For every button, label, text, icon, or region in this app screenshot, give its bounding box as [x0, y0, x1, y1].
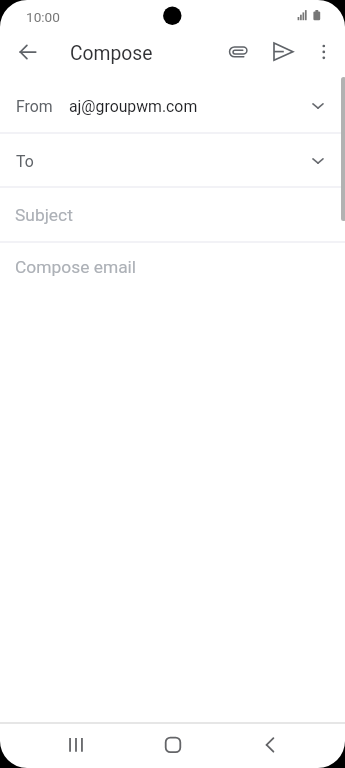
staticText: aj@groupwm.com: [69, 97, 198, 116]
button[interactable]: Home: [155, 727, 191, 763]
button[interactable]: Compose email: [0, 242, 345, 294]
button[interactable]: Attach file: [220, 34, 256, 70]
staticText: To: [16, 152, 34, 171]
staticText: 10:00: [26, 9, 60, 25]
button[interactable]: Send: [265, 34, 301, 70]
button[interactable]: Expand: [306, 94, 330, 118]
button[interactable]: Recent apps: [58, 727, 94, 763]
staticText: From: [16, 97, 53, 116]
button[interactable]: Expand: [306, 149, 330, 173]
button[interactable]: Back: [252, 727, 288, 763]
staticText: Compose: [70, 42, 153, 65]
button[interactable]: Subject: [0, 187, 345, 241]
staticText: Subject: [15, 205, 73, 225]
button[interactable]: From: [0, 78, 345, 132]
button[interactable]: To: [0, 133, 345, 186]
staticText: Compose email: [15, 257, 137, 277]
button[interactable]: Navigate up: [10, 34, 46, 70]
button[interactable]: More options: [306, 34, 342, 70]
